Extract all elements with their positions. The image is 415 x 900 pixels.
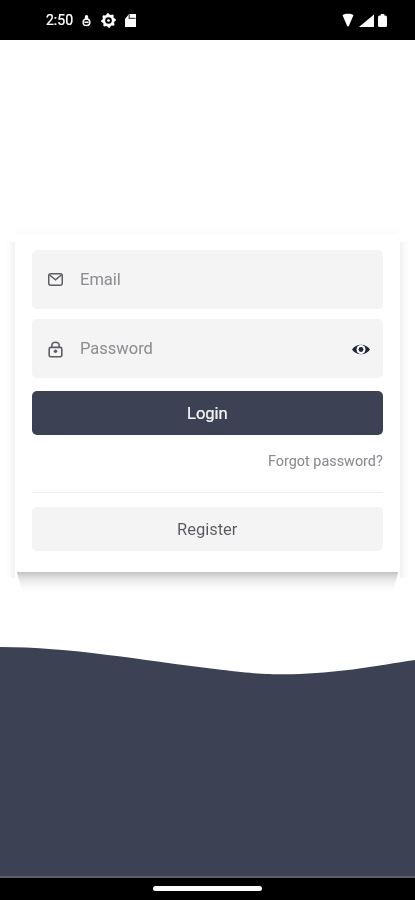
staticText: Forgot password? xyxy=(268,453,383,470)
button[interactable]: Password xyxy=(32,319,383,378)
button[interactable]: Register xyxy=(32,507,383,551)
button[interactable]: Login xyxy=(32,391,383,435)
staticText: Register xyxy=(177,520,238,539)
button[interactable]: Show password xyxy=(351,339,371,359)
staticText: Login xyxy=(187,404,228,423)
staticText: Email xyxy=(80,270,121,289)
staticText: Password xyxy=(80,339,153,358)
staticText: 2:50 xyxy=(46,12,73,28)
button[interactable]: Forgot password? xyxy=(268,453,383,470)
button[interactable]: Email xyxy=(32,250,383,309)
